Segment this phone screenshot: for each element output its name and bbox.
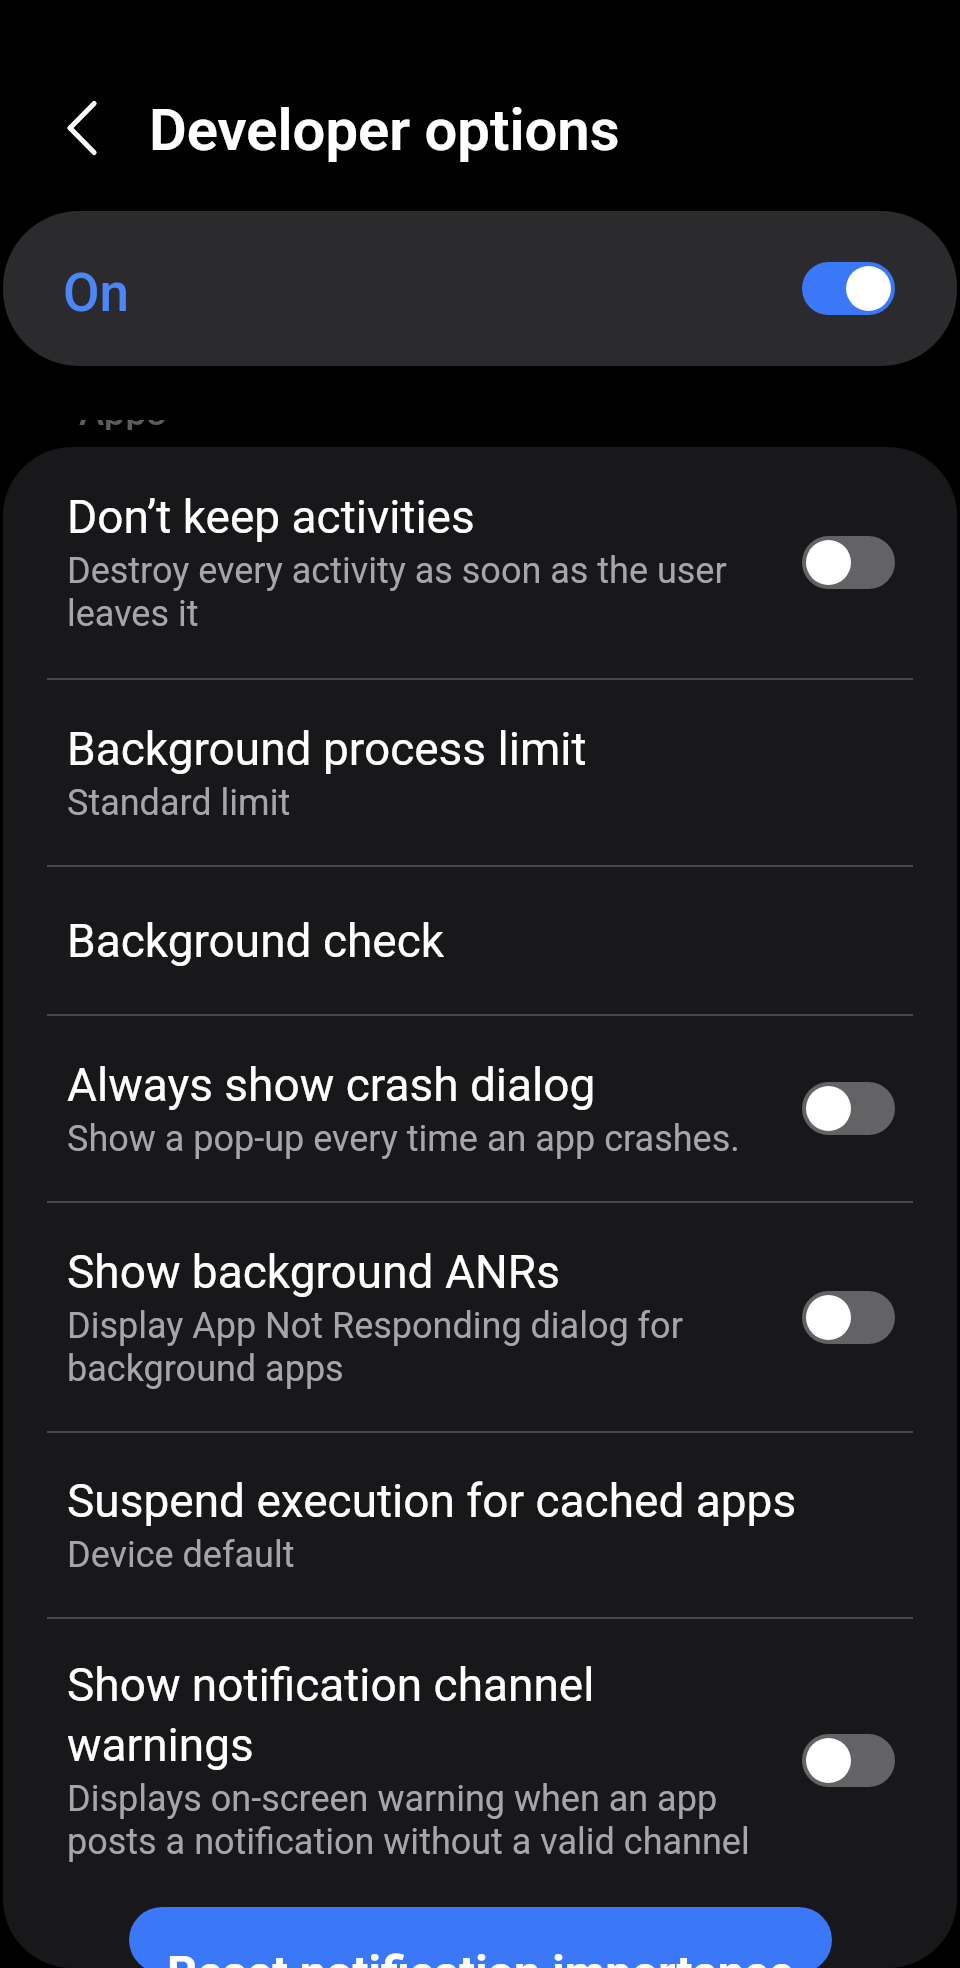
staticText: Display App Not Responding dialog for ba… — [67, 1305, 772, 1390]
button[interactable]: Reset notification importance — [129, 1907, 832, 1968]
button[interactable]: Turn on — [802, 1291, 895, 1344]
button[interactable]: Turn on — [802, 536, 895, 589]
staticText: On — [63, 262, 130, 324]
button[interactable]: Turn on — [802, 1082, 895, 1135]
staticText: Apps — [79, 420, 167, 430]
button[interactable]: Navigate up — [43, 92, 115, 164]
staticText: Don’t keep activities — [67, 490, 475, 544]
button[interactable]: Show background ANRs — [3, 1203, 957, 1431]
staticText: Show notification channel warnings — [67, 1658, 772, 1772]
staticText: Suspend execution for cached apps — [67, 1474, 797, 1528]
staticText: Reset notification importance — [167, 1945, 794, 1968]
button[interactable]: Suspend execution for cached apps — [3, 1433, 957, 1617]
staticText: Standard limit — [67, 782, 291, 824]
button[interactable]: Always show crash dialog — [3, 1016, 957, 1201]
staticText: Background process limit — [67, 722, 587, 776]
button[interactable]: On — [3, 211, 957, 366]
staticText: Background check — [67, 914, 445, 968]
staticText: Show a pop-up every time an app crashes. — [67, 1118, 740, 1160]
staticText: Always show crash dialog — [67, 1058, 596, 1112]
staticText: Show background ANRs — [67, 1245, 560, 1299]
button[interactable]: Don’t keep activities — [3, 447, 957, 678]
button[interactable]: Background check — [3, 867, 957, 1014]
staticText: Device default — [67, 1534, 295, 1576]
staticText: Displays on-screen warning when an app p… — [67, 1778, 772, 1863]
staticText: Developer options — [149, 96, 620, 164]
button[interactable]: Background process limit — [3, 680, 957, 865]
button[interactable]: Turn on — [802, 1734, 895, 1787]
staticText: Destroy every activity as soon as the us… — [67, 550, 772, 635]
button[interactable]: Turn off — [802, 262, 895, 315]
button[interactable]: Show notification channel warnings — [3, 1619, 957, 1902]
